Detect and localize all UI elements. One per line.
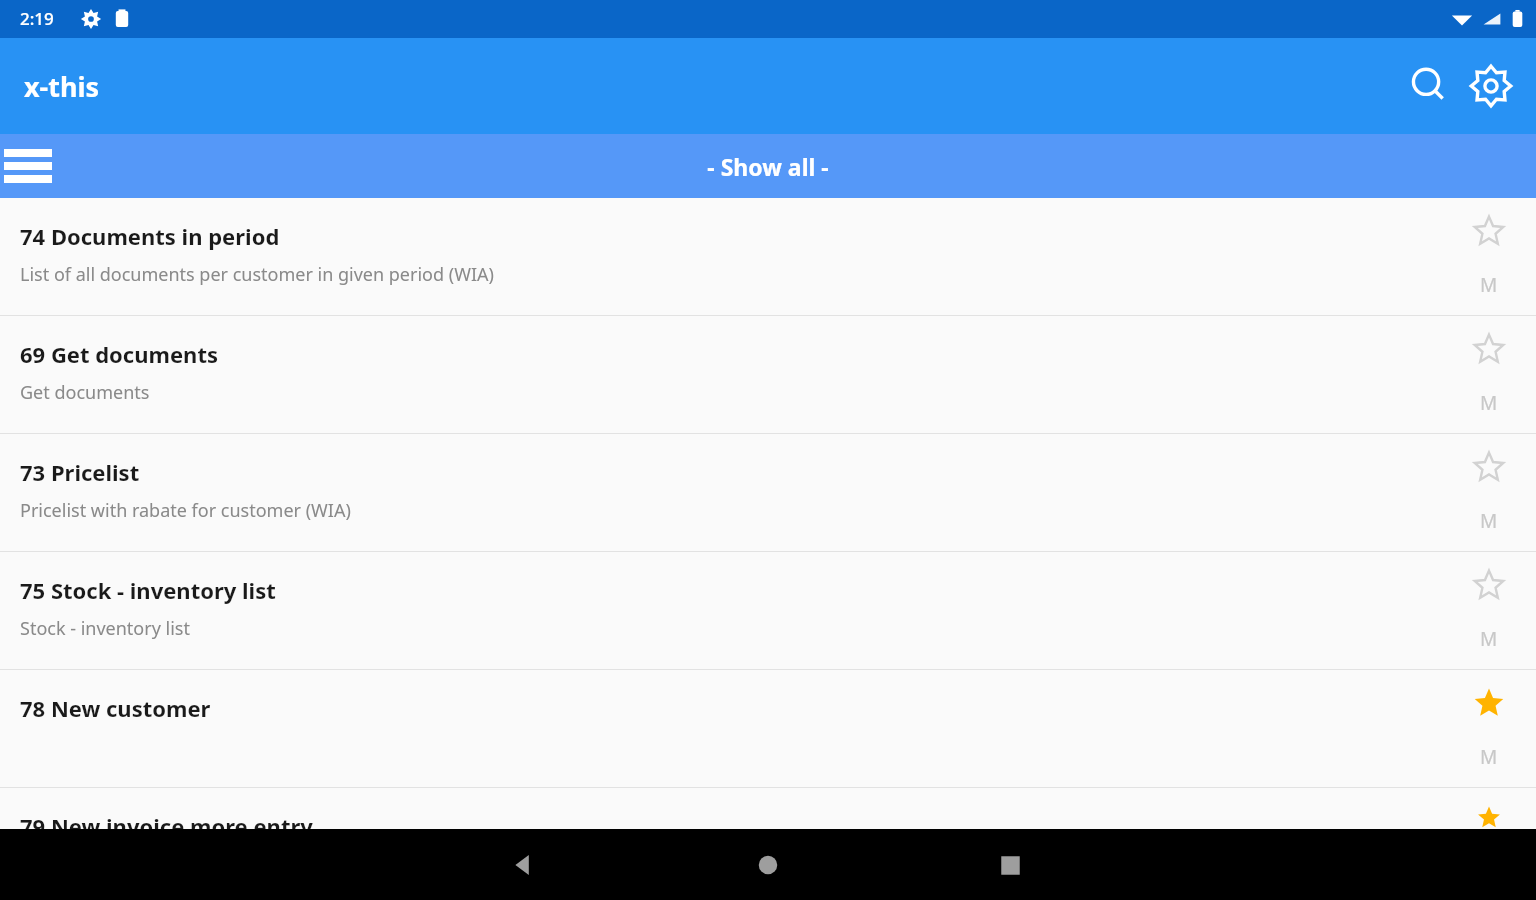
button[interactable]: Settings (1460, 55, 1522, 117)
button[interactable]: Recent apps (976, 831, 1044, 899)
button[interactable]: Add favourite (1474, 570, 1504, 652)
staticText: M (1480, 744, 1498, 770)
button[interactable]: Menu (0, 134, 64, 198)
staticText: 79 New invoice more entry (20, 811, 313, 829)
staticText: M (1480, 272, 1498, 298)
staticText: M (1480, 390, 1498, 416)
button[interactable]: Add favourite (1474, 216, 1504, 298)
button[interactable]: Add favourite (1474, 334, 1504, 416)
staticText: 2:19 (20, 7, 54, 30)
staticText: 78 New customer (20, 693, 211, 723)
staticText: 74 Documents in period (20, 221, 280, 251)
button[interactable]: Home (734, 831, 802, 899)
button[interactable]: 79 New invoice more entry (0, 788, 1536, 829)
button[interactable]: 73 Pricelist (0, 434, 1536, 551)
button[interactable]: 74 Documents in period (0, 198, 1536, 315)
button[interactable]: 78 New customer (0, 670, 1536, 787)
staticText: 69 Get documents (20, 339, 219, 369)
staticText: Stock - inventory list (20, 616, 190, 641)
button[interactable]: 69 Get documents (0, 316, 1536, 433)
staticText: M (1480, 626, 1498, 652)
staticText: 75 Stock - inventory list (20, 575, 276, 605)
staticText: Pricelist with rabate for customer (WIA) (20, 498, 351, 523)
button[interactable]: Search (1398, 55, 1460, 117)
button[interactable]: Remove favourite (1474, 688, 1504, 770)
button[interactable]: - Show all - (707, 151, 829, 182)
staticText: x-this (24, 68, 100, 105)
button[interactable]: Back (490, 831, 558, 899)
staticText: Get documents (20, 380, 150, 405)
staticText: M (1480, 508, 1498, 534)
button[interactable]: Remove favourite (1474, 806, 1504, 829)
staticText: 73 Pricelist (20, 457, 140, 487)
button[interactable]: 75 Stock - inventory list (0, 552, 1536, 669)
button[interactable]: Add favourite (1474, 452, 1504, 534)
staticText: List of all documents per customer in gi… (20, 262, 494, 287)
